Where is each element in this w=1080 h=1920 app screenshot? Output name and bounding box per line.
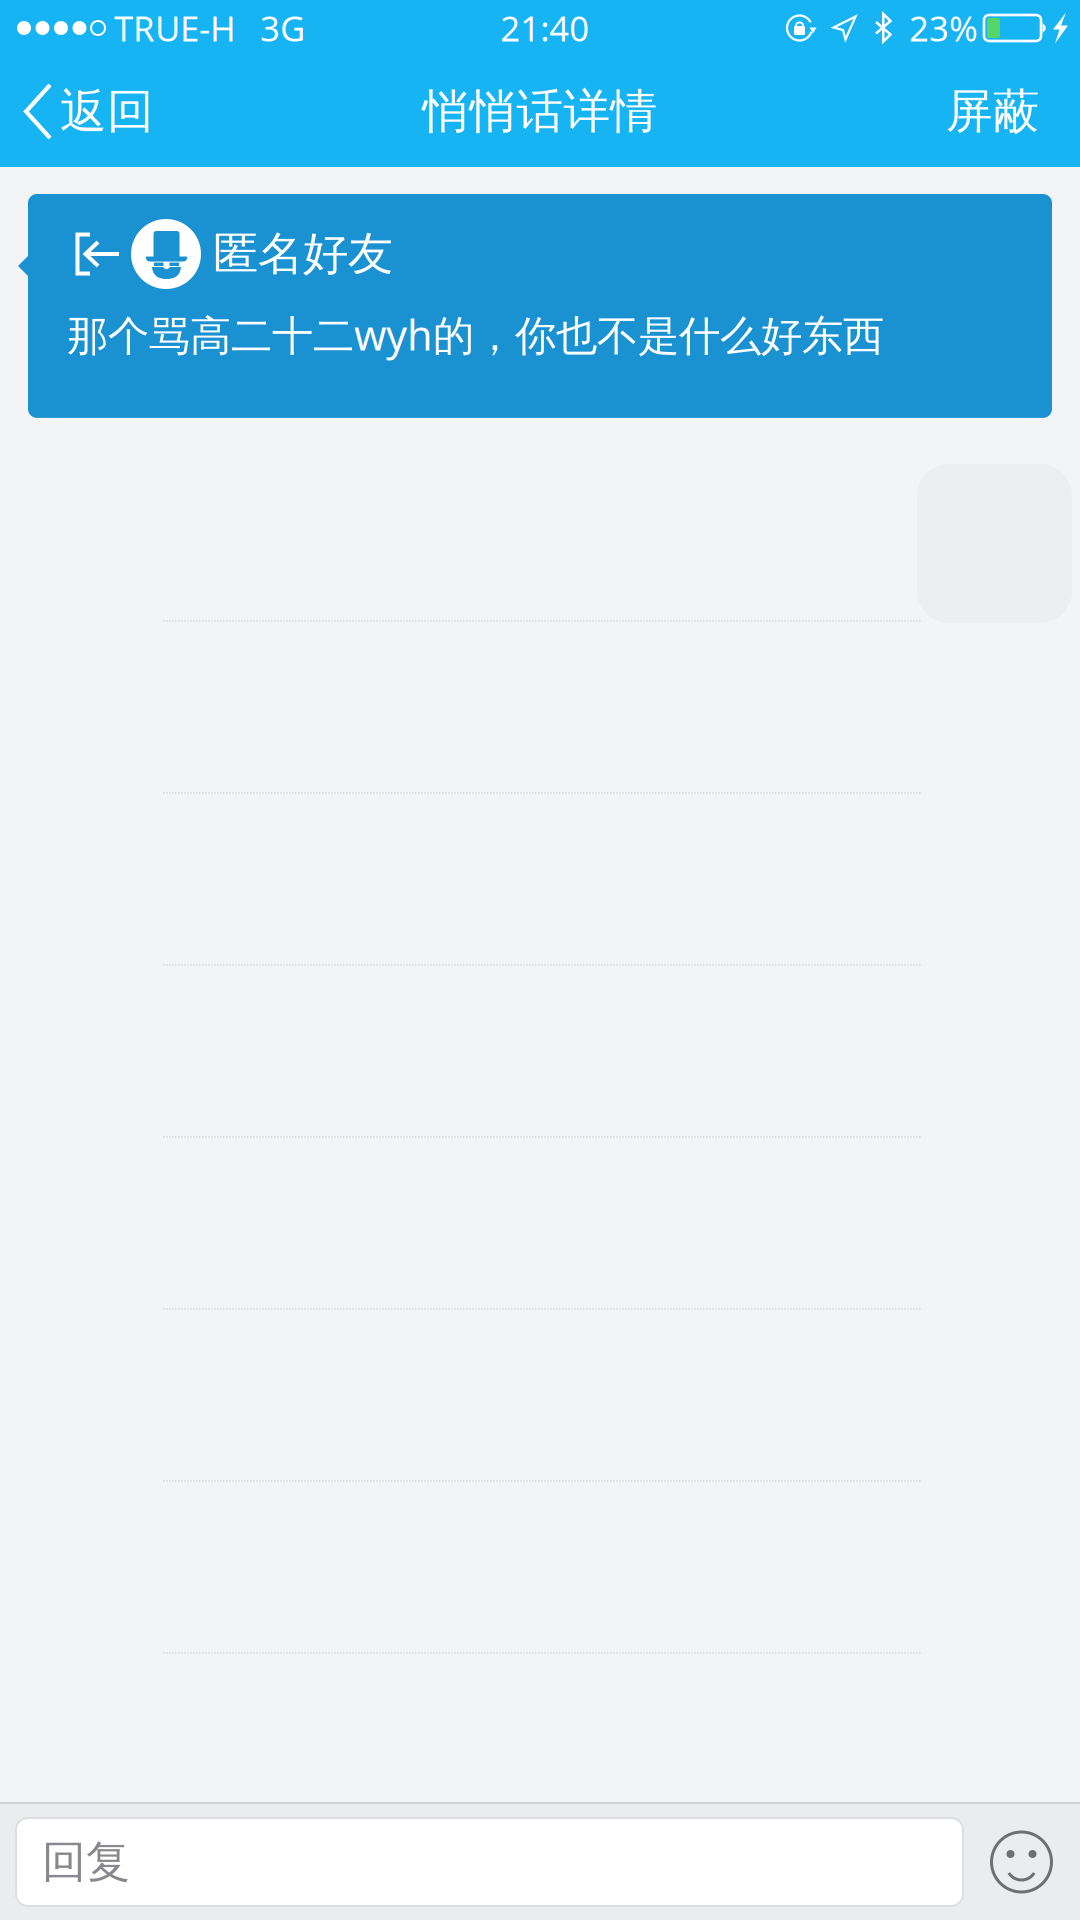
staticText: 匿名好友 bbox=[213, 226, 393, 282]
staticText: 21:40 bbox=[500, 5, 589, 51]
button[interactable]: 回复 bbox=[16, 1818, 963, 1906]
staticText: 屏蔽 bbox=[946, 83, 1040, 140]
staticText: 那个骂高二十二wyh的，你也不是什么好东西 bbox=[67, 307, 884, 362]
staticText: 23% bbox=[909, 5, 978, 51]
staticText: 返回 bbox=[60, 83, 154, 140]
button[interactable]: 匿名好友 bbox=[0, 194, 1080, 418]
button[interactable]: 屏蔽 bbox=[918, 56, 1080, 167]
button[interactable]: 返回 bbox=[0, 56, 174, 167]
staticText: TRUE-H bbox=[114, 5, 236, 51]
staticText: 回复 bbox=[42, 1835, 130, 1889]
button[interactable]: Emoji bbox=[963, 1812, 1080, 1912]
staticText: 悄悄话详情 bbox=[422, 83, 657, 140]
staticText: 3G bbox=[260, 5, 305, 51]
